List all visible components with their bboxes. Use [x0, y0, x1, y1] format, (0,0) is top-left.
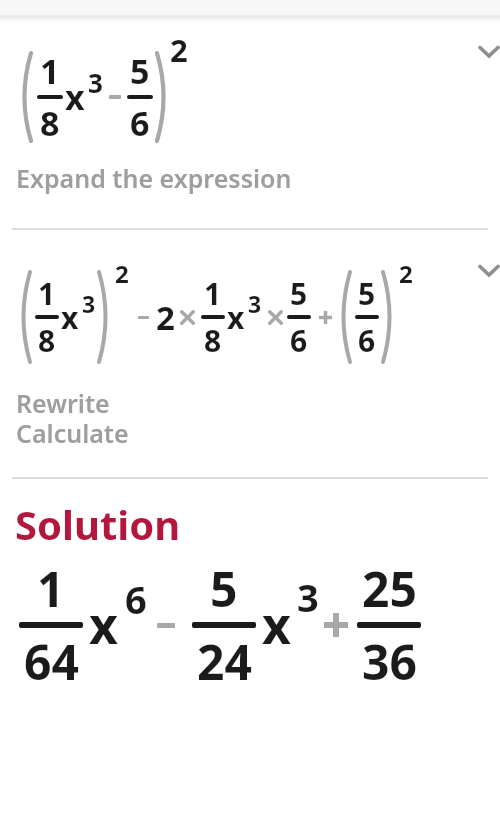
staticText: Rewrite [16, 386, 110, 420]
staticText: 8 [40, 100, 60, 146]
staticText: 5 [210, 556, 238, 621]
staticText: 2 [170, 29, 188, 71]
staticText: x [89, 591, 118, 659]
button[interactable]: 1 [22, 47, 188, 147]
staticText: 8 [38, 320, 56, 361]
staticText: 6 [290, 320, 308, 361]
button[interactable] [478, 44, 500, 60]
staticText: 25 [362, 556, 417, 621]
staticText: 3 [82, 288, 96, 319]
staticText: x [61, 297, 79, 338]
staticText: 64 [24, 629, 79, 694]
staticText: 3 [88, 65, 103, 100]
staticText: 3 [248, 288, 262, 319]
staticText: 1 [40, 48, 60, 94]
staticText: 36 [362, 629, 417, 694]
staticText: Calculate [16, 416, 129, 450]
staticText: x [65, 74, 85, 120]
staticText: Expand the expression [16, 161, 292, 195]
staticText: 24 [197, 629, 252, 694]
button[interactable]: Rewrite [16, 386, 110, 420]
staticText: 6 [125, 573, 147, 625]
staticText: 5 [130, 48, 150, 94]
staticText: x [262, 591, 291, 659]
button[interactable]: Calculate [16, 416, 129, 450]
staticText: x [227, 297, 245, 338]
staticText: 5 [358, 273, 376, 314]
staticText: 6 [130, 100, 150, 146]
staticText: 1 [37, 556, 65, 621]
staticText: 2 [115, 257, 129, 290]
button[interactable]: 1 [21, 267, 413, 367]
staticText: 3 [297, 571, 319, 623]
staticText: 8 [204, 320, 222, 361]
staticText: Solution [15, 497, 181, 551]
staticText: 6 [358, 320, 376, 361]
staticText: 2 [399, 257, 413, 290]
staticText: 5 [290, 273, 308, 314]
button[interactable] [478, 263, 500, 279]
staticText: 1 [38, 273, 56, 314]
staticText: 2 [156, 295, 175, 340]
staticText: 1 [204, 273, 222, 314]
button[interactable]: Expand the expression [16, 161, 292, 195]
